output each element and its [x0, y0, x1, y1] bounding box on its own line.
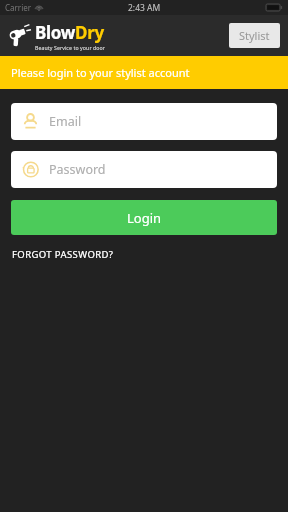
staticText: BlowDry: [35, 21, 104, 44]
staticText: Please login to your stylist account: [11, 65, 190, 80]
staticText: Carrier: [5, 2, 32, 13]
button[interactable]: FORGOT PASSWORD?: [11, 245, 115, 264]
staticText: FORGOT PASSWORD?: [12, 248, 114, 261]
button[interactable]: Stylist: [229, 23, 280, 48]
button[interactable]: Email: [11, 103, 277, 140]
staticText: Login: [127, 209, 162, 227]
staticText: Password: [49, 161, 106, 178]
button[interactable]: Password: [11, 151, 277, 188]
staticText: Beauty Service to your door: [35, 44, 106, 51]
staticText: Stylist: [239, 28, 270, 43]
staticText: Email: [49, 113, 82, 130]
staticText: 2:43 AM: [128, 2, 161, 14]
button[interactable]: Login: [11, 200, 277, 235]
